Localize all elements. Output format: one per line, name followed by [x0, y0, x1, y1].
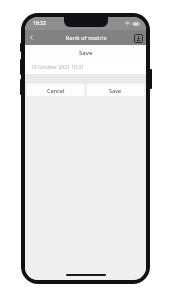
- staticText: Save: [79, 49, 93, 57]
- button[interactable]: 10 October 2021 10:31: [28, 62, 143, 73]
- button[interactable]: Save: [87, 84, 144, 96]
- button[interactable]: Download: [133, 33, 143, 43]
- staticText: 10 October 2021 10:31: [31, 64, 84, 71]
- button[interactable]: Back: [25, 31, 38, 44]
- staticText: Cancel: [47, 87, 65, 94]
- button[interactable]: Cancel: [27, 84, 84, 96]
- staticText: Save: [109, 87, 122, 94]
- staticText: 10:32: [33, 20, 46, 27]
- staticText: Rank of matrix: [65, 34, 107, 42]
